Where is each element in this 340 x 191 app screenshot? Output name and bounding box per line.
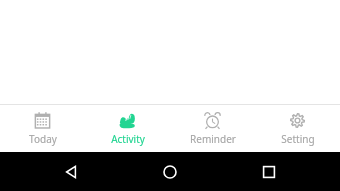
button[interactable]: Reminder xyxy=(170,105,255,152)
button[interactable]: Activity xyxy=(85,105,170,152)
button[interactable]: Home xyxy=(146,152,194,191)
button[interactable]: Recent apps xyxy=(245,152,293,191)
button[interactable]: Setting xyxy=(255,105,340,152)
staticText: Reminder xyxy=(190,132,236,146)
staticText: Activity xyxy=(111,132,145,146)
staticText: Today xyxy=(29,132,57,146)
staticText: Setting xyxy=(281,132,315,146)
button[interactable]: Today xyxy=(0,105,85,152)
button[interactable]: Back xyxy=(47,152,95,191)
